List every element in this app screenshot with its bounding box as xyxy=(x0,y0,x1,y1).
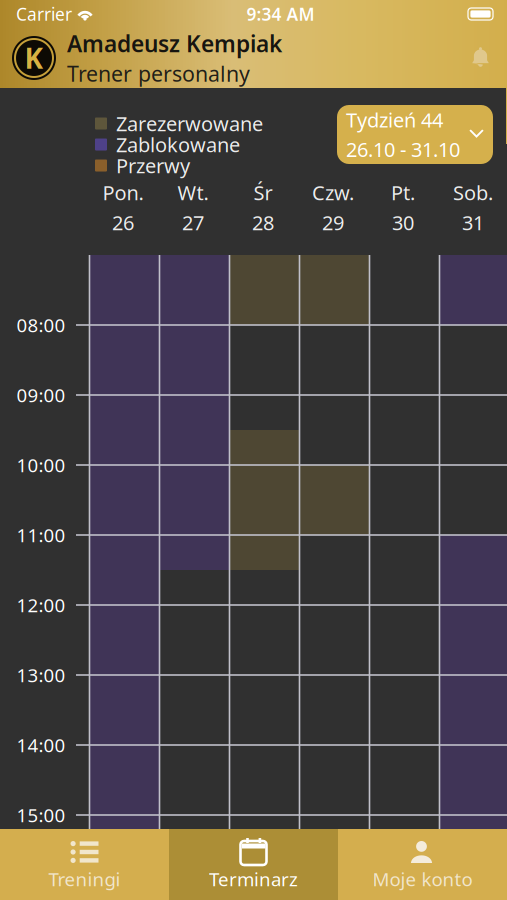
staticText: Wt. xyxy=(177,179,208,206)
staticText: Sob. xyxy=(453,179,493,206)
staticText: 26.10 - 31.10 xyxy=(346,136,460,163)
staticText: 14:00 xyxy=(16,733,65,757)
staticText: 9:34 AM xyxy=(246,2,314,25)
staticText: 12:00 xyxy=(16,593,65,617)
staticText: Moje konto xyxy=(372,867,472,891)
staticText: 15:00 xyxy=(16,803,65,827)
button[interactable]: Tydzień 44 xyxy=(337,105,493,164)
staticText: Przerwy xyxy=(116,152,190,179)
staticText: 28 xyxy=(252,209,274,236)
button[interactable]: Terminarz xyxy=(169,829,338,900)
staticText: Treningi xyxy=(48,867,120,891)
staticText: Zarezerwowane xyxy=(116,110,263,137)
staticText: 08:00 xyxy=(16,313,65,337)
staticText: Pt. xyxy=(391,179,415,206)
button[interactable]: Notifications xyxy=(454,28,507,88)
staticText: 11:00 xyxy=(16,523,65,547)
staticText: 29 xyxy=(322,209,344,236)
staticText: K xyxy=(24,39,43,77)
staticText: Śr xyxy=(253,179,272,206)
staticText: Czw. xyxy=(312,179,354,206)
staticText: 10:00 xyxy=(16,453,65,477)
staticText: Carrier xyxy=(16,2,72,25)
button[interactable]: Moje konto xyxy=(338,829,507,900)
staticText: Trener personalny xyxy=(67,59,250,88)
staticText: Pon. xyxy=(102,179,143,206)
staticText: 26 xyxy=(112,209,134,236)
staticText: 27 xyxy=(182,209,204,236)
staticText: 31 xyxy=(462,209,484,236)
staticText: Amadeusz Kempiak xyxy=(67,28,282,58)
staticText: 13:00 xyxy=(16,663,65,687)
button[interactable]: Treningi xyxy=(0,829,169,900)
staticText: 09:00 xyxy=(16,383,65,407)
staticText: 30 xyxy=(392,209,414,236)
staticText: Terminarz xyxy=(209,867,298,891)
staticText: Tydzień 44 xyxy=(346,106,443,133)
staticText: Zablokowane xyxy=(116,131,240,158)
